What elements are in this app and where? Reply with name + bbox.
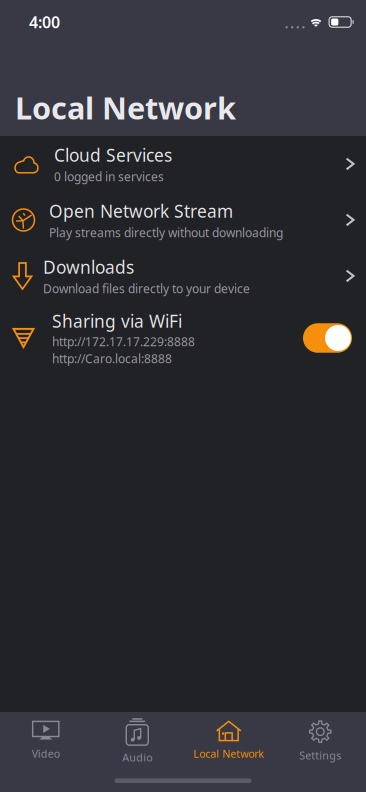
button[interactable]: Audio [91, 712, 183, 762]
button[interactable]: Sharing via WiFi [303, 323, 352, 353]
staticText: 0 logged in services [54, 168, 164, 184]
button[interactable]: Video [0, 712, 91, 762]
button[interactable]: Downloads [0, 248, 366, 304]
staticText: Settings [299, 748, 341, 762]
button[interactable]: Local Network [183, 712, 274, 762]
staticText: Local Network [15, 87, 236, 128]
staticText: Video [32, 746, 60, 761]
staticText: Download files directly to your device [43, 280, 250, 296]
button[interactable]: Cloud Services [0, 136, 366, 192]
staticText: http://Caro.local:8888 [52, 350, 172, 366]
staticText: Play streams directly without downloadin… [49, 224, 283, 240]
staticText: 4:00 [29, 11, 60, 33]
staticText: Cloud Services [54, 143, 172, 166]
button[interactable]: Settings [274, 712, 366, 762]
staticText: Open Network Stream [49, 199, 233, 222]
staticText: http://172.17.17.229:8888 [52, 334, 195, 349]
staticText: Audio [122, 750, 152, 764]
staticText: Sharing via WiFi [52, 310, 182, 333]
staticText: Downloads [43, 255, 134, 278]
staticText: Local Network [193, 746, 264, 761]
button[interactable]: Open Network Stream [0, 192, 366, 248]
